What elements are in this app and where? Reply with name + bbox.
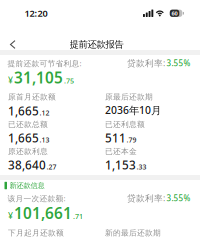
staticText: .75 (64, 76, 74, 85)
staticText: 1,665 (8, 130, 39, 146)
staticText: ¥ (8, 210, 13, 221)
staticText: 60 (172, 9, 178, 17)
staticText: 新还款信息 (9, 181, 44, 190)
staticText: 31,105 (14, 67, 63, 88)
staticText: .27 (46, 162, 56, 171)
staticText: 已还本金 (105, 146, 137, 156)
staticText: .79 (126, 135, 136, 144)
staticText: ¥ (8, 74, 13, 86)
staticText: .33 (136, 162, 146, 171)
staticText: .71 (73, 211, 83, 221)
staticText: .12 (39, 108, 49, 117)
staticText: 101,661 (14, 202, 72, 223)
staticText: 3.55% (166, 193, 190, 203)
staticText: 2036年10月 (105, 103, 161, 117)
staticText: 提前还款可节省利息: (7, 58, 81, 68)
staticText: 原首月还款额 (8, 92, 56, 102)
staticText: 贷款利率: (127, 57, 165, 69)
staticText: .13 (39, 135, 49, 144)
staticText: 38,640 (8, 157, 46, 173)
staticText: 已还利息额 (105, 119, 145, 129)
staticText: 下月起月还款额 (8, 228, 64, 238)
staticText: 该月一次还款额: (7, 193, 65, 203)
staticText: 3.55% (166, 58, 190, 68)
staticText: 511 (105, 130, 126, 146)
staticText: 12:20 (24, 7, 47, 19)
staticText: 提前还款报告 (69, 39, 123, 50)
staticText: 原最后还款期 (105, 92, 153, 102)
staticText: 1,153 (105, 157, 136, 173)
staticText: 原还款利息 (8, 146, 48, 156)
staticText: 1,665 (8, 103, 39, 119)
button[interactable]: 返回 (0, 40, 16, 50)
staticText: 贷款利率: (127, 192, 165, 204)
staticText: 已还款总额 (8, 119, 48, 129)
staticText: 新的最后还款期 (105, 228, 161, 238)
